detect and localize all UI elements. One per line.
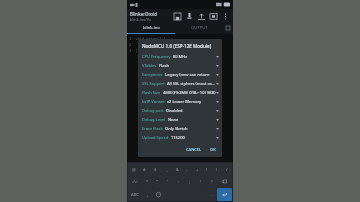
button[interactable]: + — [192, 163, 202, 175]
staticText: 115200 — [171, 135, 216, 140]
button[interactable]: " — [152, 175, 162, 188]
staticText: : — [178, 179, 180, 184]
staticText: NodeMCU 1.0 (ESP-12E Module) — [142, 43, 212, 49]
staticText: * — [146, 179, 149, 184]
button[interactable]: OK — [208, 145, 218, 154]
button[interactable]: CPU Frequency — [138, 52, 222, 61]
staticText: blink.ino/Vx — [130, 17, 152, 22]
button[interactable]: Flash Size — [138, 88, 222, 97]
staticText: ; — [189, 179, 191, 184]
staticText: BlinkerDroid — [130, 11, 158, 17]
button[interactable]: blink.ino — [127, 23, 175, 33]
staticText: # — [143, 167, 146, 172]
staticText: OK — [210, 147, 216, 152]
button[interactable]: ABC — [128, 188, 142, 201]
button[interactable]: Backspace — [217, 175, 232, 188]
staticText: CPU Frequency — [142, 54, 171, 59]
staticText: ' — [167, 179, 168, 184]
staticText: ? — [211, 179, 213, 184]
button[interactable]: Upload — [195, 10, 207, 22]
button[interactable]: _ — [161, 163, 172, 175]
staticText: Upload Speed — [142, 135, 169, 140]
staticText: & — [176, 167, 179, 172]
staticText: - — [186, 167, 188, 172]
button[interactable]: ; — [184, 175, 195, 188]
staticText: None — [168, 117, 216, 122]
staticText: =\< — [132, 179, 139, 184]
staticText: . — [211, 192, 213, 197]
staticText: Erase Flash — [142, 126, 163, 131]
button[interactable]: Erase Flash — [138, 124, 222, 133]
staticText: , — [147, 192, 149, 197]
staticText: VTables — [142, 63, 157, 68]
button[interactable]: @ — [128, 163, 139, 175]
staticText: / — [226, 167, 228, 172]
button[interactable]: Enter — [217, 188, 232, 201]
staticText: _ — [166, 167, 168, 172]
staticText: $ — [154, 167, 157, 172]
button[interactable]: =\< — [128, 175, 142, 188]
staticText: SSL Support — [142, 81, 165, 86]
staticText: Only Sketch — [165, 126, 216, 131]
button[interactable]: , — [142, 188, 153, 201]
staticText: ABC — [131, 192, 139, 197]
staticText: 4MB (FS:2MB OTA:~1019KB) — [163, 90, 216, 95]
staticText: @ — [132, 167, 136, 172]
button[interactable]: Debug port — [138, 106, 222, 115]
button[interactable]: More options — [219, 10, 231, 22]
staticText: ! — [200, 179, 202, 184]
staticText: 3 } — [129, 48, 138, 53]
button[interactable]: * — [142, 175, 152, 188]
staticText: 1 void setup() { — [129, 36, 166, 41]
staticText: v2 Lower Memory — [167, 99, 216, 104]
button[interactable]: ? — [206, 175, 217, 188]
staticText: 80 MHz — [173, 54, 216, 59]
staticText: Flash Size — [142, 90, 161, 95]
button[interactable]: Verify — [183, 10, 195, 22]
button[interactable]: OUTPUT — [175, 23, 223, 33]
staticText: 2 Serial.begin(115200); — [129, 42, 186, 47]
button[interactable]: Upload Speed — [138, 133, 222, 142]
staticText: Exceptions — [142, 72, 163, 77]
button[interactable]: Emoji — [153, 188, 164, 201]
button[interactable]: Add tab — [223, 23, 233, 33]
staticText: Debug port — [142, 108, 164, 113]
button[interactable]: IwIP Variant — [138, 97, 222, 106]
button[interactable]: # — [139, 163, 150, 175]
staticText: + — [196, 167, 199, 172]
button[interactable]: SSL Support — [138, 79, 222, 88]
staticText: OUTPUT — [191, 25, 208, 31]
button[interactable]: / — [222, 163, 232, 175]
staticText: Legacy (new can return nu... — [165, 72, 216, 77]
button[interactable]: Exceptions — [138, 70, 222, 79]
staticText: CANCEL — [186, 147, 202, 152]
button[interactable]: Debug Level — [138, 115, 222, 124]
button[interactable]: ! — [195, 175, 206, 188]
staticText: IwIP Variant — [142, 99, 165, 104]
staticText: ) — [216, 167, 218, 172]
button[interactable]: & — [172, 163, 182, 175]
button[interactable]: Save — [171, 10, 183, 22]
button[interactable]: Board — [207, 10, 219, 22]
staticText: " — [156, 179, 158, 184]
button[interactable]: ) — [212, 163, 222, 175]
staticText: Flash — [159, 63, 216, 68]
button[interactable]: $ — [150, 163, 161, 175]
button[interactable]: VTables — [138, 61, 222, 70]
staticText: Disabled — [166, 108, 216, 113]
button[interactable]: CANCEL — [184, 145, 204, 154]
staticText: blink.ino — [143, 25, 160, 31]
button[interactable]: ( — [202, 163, 212, 175]
staticText: All SSL ciphers (most co... — [167, 81, 216, 86]
staticText: Debug Level — [142, 117, 166, 122]
staticText: ( — [206, 167, 208, 172]
